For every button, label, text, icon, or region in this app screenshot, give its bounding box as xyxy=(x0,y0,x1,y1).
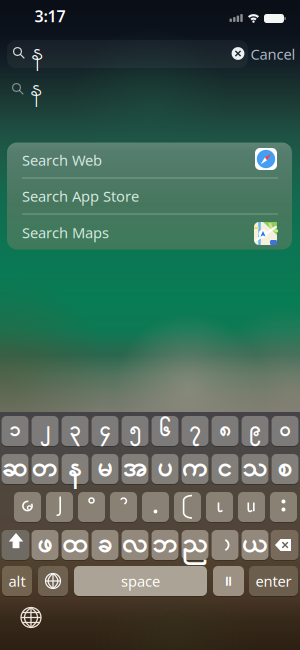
staticText: လ xyxy=(121,524,148,566)
button[interactable]: medial ya xyxy=(46,492,73,522)
button[interactable]: e vowel xyxy=(14,492,41,522)
button[interactable]: Clear text xyxy=(231,46,245,60)
button[interactable]: enter xyxy=(249,566,298,596)
button[interactable]: အ xyxy=(121,454,148,484)
button[interactable]: Search Maps xyxy=(7,215,292,250)
button[interactable]: လ xyxy=(121,530,148,560)
staticText: င xyxy=(217,448,233,490)
staticText: ၈ xyxy=(219,415,231,447)
staticText: ၉ xyxy=(249,415,261,447)
button[interactable]: alt xyxy=(2,566,32,596)
button[interactable]: ၅ xyxy=(121,416,148,446)
staticText: က xyxy=(181,448,208,490)
button[interactable]: ပ xyxy=(151,454,178,484)
button[interactable]: Search App Store xyxy=(7,178,292,213)
staticText: န xyxy=(30,72,42,108)
button[interactable]: Cancel xyxy=(250,44,295,64)
button[interactable]: dot below xyxy=(142,492,169,522)
button[interactable]: ။ xyxy=(213,566,244,596)
button[interactable]: သ xyxy=(241,454,268,484)
button[interactable]: medial ra xyxy=(174,492,201,522)
staticText: ခ xyxy=(97,524,113,566)
staticText: ၀ xyxy=(279,415,291,447)
staticText: ၃ xyxy=(69,415,81,447)
button[interactable]: Delete xyxy=(270,530,298,560)
staticText: ပ xyxy=(157,448,173,490)
button[interactable]: ခ xyxy=(91,530,118,560)
staticText: ၇ xyxy=(189,415,201,447)
staticText: enter xyxy=(255,571,291,591)
staticText: ဖ xyxy=(37,524,53,566)
staticText: Search Web xyxy=(22,150,102,170)
button[interactable] xyxy=(211,530,238,560)
button[interactable]: uu vowel xyxy=(238,492,265,522)
button[interactable]: i vowel xyxy=(78,492,105,522)
button[interactable]: asat xyxy=(110,492,137,522)
staticText: ယ xyxy=(241,524,268,566)
staticText: ထ xyxy=(62,524,88,566)
button[interactable]: Search Web xyxy=(7,142,292,177)
staticText: ၁ xyxy=(9,415,21,447)
staticText: အ xyxy=(122,448,147,490)
button[interactable]: ၀ xyxy=(271,416,298,446)
button[interactable]: တ xyxy=(31,454,58,484)
button[interactable]: Switch keyboard xyxy=(16,603,46,633)
button[interactable]: စ xyxy=(271,454,298,484)
button[interactable]: visarga xyxy=(270,492,297,522)
staticText: မ xyxy=(97,448,113,490)
staticText: ဘ xyxy=(152,524,178,566)
staticText: ၂ xyxy=(39,415,51,447)
button[interactable]: ဆ xyxy=(1,454,28,484)
button[interactable]: က xyxy=(181,454,208,484)
staticText: ည xyxy=(182,524,208,566)
button[interactable]: ဘ xyxy=(151,530,178,560)
button[interactable]: ၄ xyxy=(91,416,118,446)
staticText: Cancel xyxy=(250,44,295,64)
staticText: alt xyxy=(8,571,25,591)
staticText: သ xyxy=(242,448,268,490)
staticText: ။ xyxy=(225,567,232,595)
staticText: ၆ xyxy=(159,415,171,447)
button[interactable]: Next keyboard xyxy=(38,566,68,596)
button[interactable]: န xyxy=(61,454,88,484)
staticText: Search Maps xyxy=(22,223,109,242)
button[interactable]: ၃ xyxy=(61,416,88,446)
staticText: ဆ xyxy=(1,448,28,490)
button[interactable]: ထ xyxy=(61,530,88,560)
button[interactable]: ည xyxy=(181,530,208,560)
staticText: ၄ xyxy=(99,415,111,447)
button[interactable]: ဖ xyxy=(31,530,58,560)
button[interactable]: မ xyxy=(91,454,118,484)
button[interactable]: ၁ xyxy=(1,416,28,446)
button[interactable]: space xyxy=(74,566,207,596)
button[interactable]: u vowel xyxy=(206,492,233,522)
staticText: ၅ xyxy=(129,415,141,447)
button[interactable]: ၉ xyxy=(241,416,268,446)
button[interactable]: ယ xyxy=(241,530,268,560)
button[interactable]: ၂ xyxy=(31,416,58,446)
staticText: န xyxy=(31,36,43,72)
button[interactable]: Shift xyxy=(1,530,29,560)
staticText: space xyxy=(121,571,160,591)
button[interactable]: ၆ xyxy=(151,416,178,446)
staticText: တ xyxy=(31,448,58,490)
staticText: န xyxy=(67,448,82,490)
button[interactable]: ၇ xyxy=(181,416,208,446)
staticText: စ xyxy=(277,448,293,490)
button[interactable]: င xyxy=(211,454,238,484)
staticText: 3:17 xyxy=(34,5,65,27)
button[interactable]: ၈ xyxy=(211,416,238,446)
staticText: Search App Store xyxy=(22,186,139,206)
